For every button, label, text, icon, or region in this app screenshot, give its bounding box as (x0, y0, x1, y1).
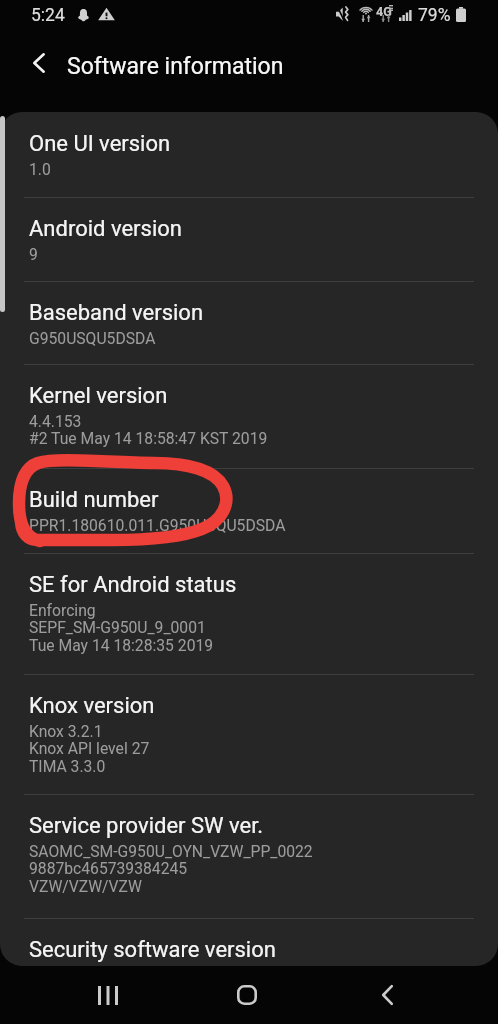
staticText: #2 Tue May 14 18:58:47 KST 2019 (29, 429, 268, 447)
button[interactable]: Knox version (0, 674, 498, 794)
button[interactable]: Recent apps (84, 975, 132, 1015)
staticText: Tue May 14 18:28:35 2019 (29, 636, 214, 654)
staticText: SEPF_SM-G950U_9_0001 (29, 618, 206, 636)
staticText: 9 (29, 245, 38, 263)
button[interactable]: SE for Android status (0, 553, 498, 674)
button[interactable]: Navigate up (0, 36, 498, 94)
staticText: 4G (376, 4, 392, 19)
staticText: Enforcing (29, 601, 96, 619)
staticText: Service provider SW ver. (29, 813, 264, 839)
staticText: Knox 3.2.1 (29, 722, 103, 740)
staticText: 4.4.153 (29, 412, 82, 430)
staticText: PPR1.180610.011.G950USQU5DSDA (29, 516, 286, 534)
staticText: Kernel version (29, 383, 168, 409)
staticText: Knox version (29, 693, 155, 719)
staticText: Knox API level 27 (29, 739, 150, 757)
staticText: TIMA 3.3.0 (29, 757, 106, 775)
button[interactable]: Kernel version (0, 364, 498, 468)
button[interactable]: One UI version (0, 112, 498, 197)
button[interactable]: Back (363, 975, 411, 1015)
staticText: Android version (29, 216, 182, 242)
staticText: Baseband version (29, 300, 204, 326)
staticText: One UI version (29, 131, 171, 157)
button[interactable]: Baseband version (0, 281, 498, 365)
button[interactable]: Service provider SW ver. (0, 794, 498, 918)
staticText: VZW/VZW/VZW (29, 877, 142, 895)
button[interactable]: Navigate up (17, 34, 61, 92)
staticText: Software information (67, 53, 284, 80)
staticText: G950USQU5DSDA (29, 329, 156, 347)
staticText: 9887bc465739384245 (29, 859, 188, 877)
button[interactable]: Android version (0, 197, 498, 281)
staticText: Security software version (29, 937, 276, 963)
button[interactable]: Build number (0, 468, 498, 553)
button[interactable]: Security software version (0, 918, 498, 966)
button[interactable]: Home (223, 975, 271, 1015)
staticText: Build number (29, 487, 159, 513)
staticText: 5:24 (31, 5, 65, 26)
staticText: SAOMC_SM-G950U_OYN_VZW_PP_0022 (29, 842, 313, 860)
staticText: SE for Android status (29, 572, 237, 598)
staticText: 79% (418, 5, 451, 26)
staticText: 1.0 (29, 160, 51, 178)
